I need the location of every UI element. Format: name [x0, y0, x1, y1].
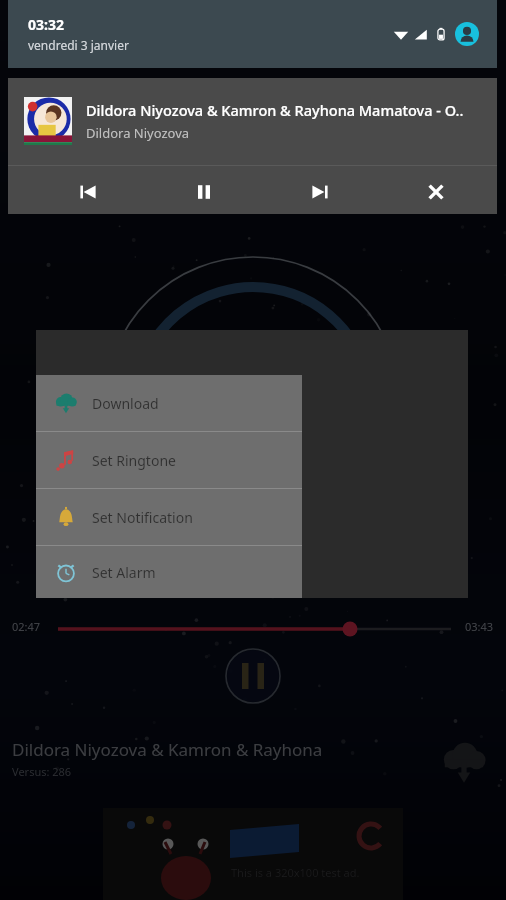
button[interactable]: Set Alarm [36, 546, 302, 598]
button[interactable]: Pause [225, 648, 281, 704]
staticText: Download [92, 394, 159, 413]
button[interactable]: Account [455, 22, 479, 46]
button[interactable]: Download [36, 375, 302, 431]
staticText: Dildora Niyozova & Kamron & Rayhona [12, 738, 323, 761]
button[interactable]: This is a 320x100 test ad. [103, 808, 403, 900]
staticText: This is a 320x100 test ad. [231, 865, 360, 880]
button[interactable] [0, 606, 506, 646]
staticText: 02:47 [12, 619, 41, 634]
button[interactable]: Set Ringtone [36, 432, 302, 488]
staticText: Dildora Niyozova & Kamron & Rayhona Mama… [86, 100, 464, 120]
staticText: Set Notification [92, 508, 193, 527]
staticText: Versus: 286 [12, 764, 72, 779]
staticText: 03:32 [28, 15, 64, 34]
staticText: 03:43 [465, 619, 494, 634]
staticText: Set Alarm [92, 563, 156, 582]
button[interactable]: Dismiss [416, 172, 456, 212]
button[interactable]: Download [36, 330, 468, 598]
button[interactable]: Dildora Niyozova & Kamron & Rayhona Mama… [8, 78, 497, 214]
button[interactable]: Download [440, 738, 488, 786]
button[interactable]: Next [300, 172, 340, 212]
staticText: Dildora Niyozova [86, 124, 190, 142]
button[interactable]: Pause [184, 172, 224, 212]
button[interactable]: Previous [68, 172, 108, 212]
staticText: vendredi 3 janvier [28, 37, 129, 53]
button[interactable]: Set Notification [36, 489, 302, 545]
staticText: Set Ringtone [92, 451, 176, 470]
